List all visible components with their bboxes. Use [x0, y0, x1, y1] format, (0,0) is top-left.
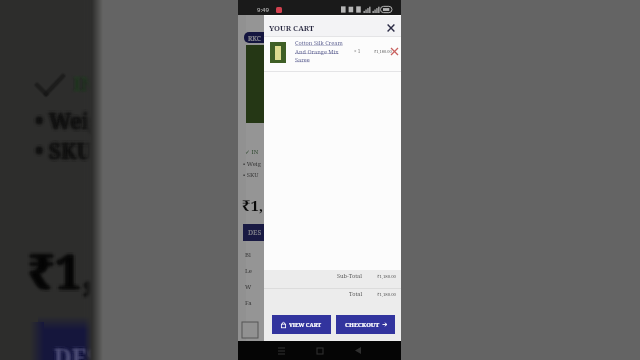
staticText: ₹1,	[28, 237, 97, 302]
button[interactable]: Remove item	[389, 46, 400, 57]
staticText: • Weig	[38, 108, 105, 137]
staticText: CHECKOUT	[345, 321, 380, 329]
staticText: IN	[73, 71, 97, 98]
staticText: • Weig	[35, 106, 102, 135]
staticText: • Weig	[243, 160, 262, 168]
staticText: DES	[54, 341, 100, 360]
staticText: IN	[74, 70, 98, 97]
button[interactable]: Recent apps	[271, 341, 291, 360]
staticText: ₹1,	[28, 238, 97, 303]
staticText: VIEW CART	[289, 321, 322, 328]
staticText: ₹1,	[29, 241, 98, 306]
staticText: • Weig	[35, 104, 102, 133]
staticText: • SKU	[36, 136, 94, 165]
staticText: • Weig	[32, 106, 99, 135]
staticText: • Weig	[32, 107, 99, 136]
staticText: • Weig	[32, 104, 99, 133]
staticText: IN	[71, 71, 95, 98]
staticText: • SKU	[35, 137, 93, 166]
staticText: ₹1,	[31, 235, 100, 300]
button[interactable]: CHECKOUT	[336, 315, 395, 334]
staticText: ₹1,	[31, 241, 100, 306]
staticText: • SKU	[38, 136, 96, 165]
staticText: × 1	[354, 48, 361, 54]
staticText: • SKU	[34, 137, 92, 166]
staticText: • Weig	[38, 104, 105, 133]
staticText: ₹1,	[25, 239, 94, 304]
staticText: • SKU	[243, 171, 259, 179]
button[interactable]: Home	[310, 341, 330, 360]
staticText: DES	[51, 341, 97, 360]
staticText: ₹1,	[27, 238, 96, 303]
staticText: DES	[57, 341, 103, 360]
staticText: • SKU	[34, 136, 92, 165]
staticText: DES	[55, 341, 101, 360]
staticText: ₹1,	[27, 239, 96, 304]
staticText: DES	[54, 340, 100, 360]
staticText: DES	[55, 344, 101, 360]
staticText: IN	[72, 71, 96, 98]
button[interactable]: VIEW CART	[272, 315, 331, 334]
staticText: ₹1,	[29, 237, 98, 302]
staticText: IN	[73, 68, 97, 95]
button[interactable]: Close cart	[384, 21, 397, 34]
staticText: Bl	[245, 251, 251, 259]
staticText: DES	[51, 342, 97, 360]
staticText: DES	[54, 342, 100, 360]
staticText: ₹1,180.00	[377, 273, 396, 279]
staticText: DES	[53, 340, 99, 360]
staticText: • SKU	[35, 140, 93, 169]
staticText: • SKU	[32, 137, 90, 166]
staticText: Sub-Total	[337, 272, 362, 280]
staticText: DES	[55, 338, 101, 360]
staticText: DES	[51, 340, 97, 360]
staticText: W	[245, 283, 252, 291]
staticText: • SKU	[38, 137, 96, 166]
staticText: Cotton Silk Cream And Orange Mix Saree	[295, 39, 345, 63]
staticText: IN	[73, 72, 97, 99]
staticText: DES	[57, 340, 103, 360]
staticText: • SKU	[38, 134, 96, 163]
staticText: • SKU	[32, 140, 90, 169]
staticText: DES	[54, 338, 100, 360]
staticText: IN	[72, 68, 96, 95]
staticText: ₹1,	[29, 235, 98, 300]
button[interactable]	[264, 37, 401, 71]
staticText: • SKU	[32, 138, 90, 167]
staticText: DES	[57, 342, 103, 360]
staticText: ₹1,	[25, 237, 94, 302]
staticText: ₹1,	[25, 238, 94, 303]
staticText: Fa	[245, 299, 252, 307]
staticText: • Weig	[36, 104, 103, 133]
staticText: • SKU	[34, 140, 92, 169]
staticText: • Weig	[36, 106, 103, 135]
staticText: IN	[73, 69, 97, 96]
staticText: IN	[75, 68, 99, 95]
staticText: • SKU	[35, 134, 93, 163]
staticText: Le	[245, 267, 252, 275]
staticText: • Weig	[36, 107, 103, 136]
staticText: • Weig	[34, 110, 101, 139]
staticText: • SKU	[35, 136, 93, 165]
staticText: • Weig	[34, 108, 101, 137]
staticText: • Weig	[34, 104, 101, 133]
staticText: RKC	[248, 34, 261, 43]
staticText: IN	[75, 70, 99, 97]
staticText: DES	[248, 228, 262, 238]
staticText: DES	[51, 338, 97, 360]
staticText: IN	[71, 69, 95, 96]
staticText: DES	[53, 341, 99, 360]
staticText: ₹1,	[28, 241, 97, 306]
staticText: IN	[75, 72, 99, 99]
staticText: IN	[72, 70, 96, 97]
staticText: • Weig	[32, 108, 99, 137]
staticText: • Weig	[36, 108, 103, 137]
staticText: IN	[72, 69, 96, 96]
staticText: • SKU	[36, 137, 94, 166]
staticText: • SKU	[38, 138, 96, 167]
staticText: • SKU	[34, 138, 92, 167]
staticText: • Weig	[32, 110, 99, 139]
staticText: DES	[57, 344, 103, 360]
staticText: IN	[74, 68, 98, 95]
button[interactable]: Back	[348, 341, 368, 360]
